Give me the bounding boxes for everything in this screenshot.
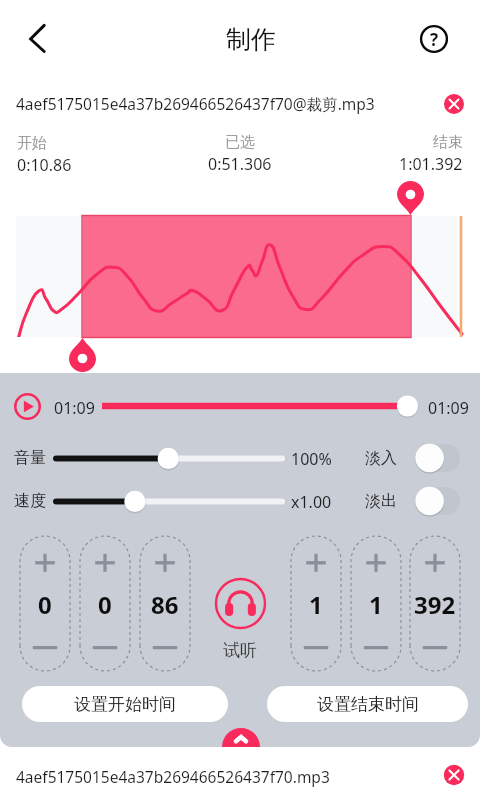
staticText: 制作	[226, 24, 276, 55]
staticText: 1	[369, 588, 383, 621]
button[interactable]: Start handle	[69, 338, 96, 372]
staticText: 392	[414, 588, 456, 621]
button[interactable]: Remove	[440, 761, 468, 789]
button[interactable]: Adjust 86	[140, 536, 190, 671]
button[interactable]: 速度	[54, 487, 284, 515]
button[interactable]: 设置开始时间	[22, 686, 228, 722]
staticText: 结束	[433, 133, 463, 152]
staticText: 音量	[14, 448, 46, 468]
button[interactable]: Back	[12, 16, 58, 62]
staticText: 1:01.392	[399, 153, 463, 175]
staticText: 01:09	[54, 397, 95, 419]
staticText: 1	[309, 588, 323, 621]
button[interactable]: Adjust 0	[20, 536, 70, 671]
button[interactable]: 淡入	[416, 444, 460, 472]
staticText: 设置开始时间	[74, 694, 176, 715]
staticText: 已选	[225, 133, 255, 152]
staticText: 淡入	[365, 448, 397, 468]
staticText: x1.00	[291, 491, 332, 513]
staticText: 0	[98, 588, 112, 621]
staticText: 0:10.86	[17, 154, 72, 176]
button[interactable]: 设置结束时间	[267, 686, 468, 722]
button[interactable]: Adjust 0	[80, 536, 130, 671]
staticText: 01:09	[428, 397, 469, 419]
button[interactable]: Adjust 1	[291, 536, 341, 671]
button[interactable]: Preview	[215, 578, 266, 629]
staticText: 速度	[14, 491, 46, 511]
button[interactable]: Help	[416, 21, 452, 57]
button[interactable]: Remove file	[439, 89, 469, 119]
staticText: 0	[38, 588, 52, 621]
staticText: 86	[151, 588, 179, 621]
button[interactable]: 淡出	[416, 487, 460, 515]
button[interactable]: 音量	[54, 444, 284, 472]
button[interactable]: End handle	[397, 181, 424, 215]
staticText: 设置结束时间	[317, 694, 419, 715]
button[interactable]: Collapse	[222, 728, 260, 747]
button[interactable]: Adjust 392	[410, 536, 460, 671]
button[interactable]: Adjust 1	[351, 536, 401, 671]
staticText: 0:51.306	[208, 153, 272, 175]
staticText: 4aef5175015e4a37b269466526437f70.mp3	[16, 766, 330, 787]
staticText: 100%	[291, 448, 332, 470]
button[interactable]: Play	[13, 392, 42, 421]
staticText: 试听	[223, 640, 257, 661]
staticText: 开始	[17, 134, 47, 153]
staticText: 淡出	[365, 491, 397, 511]
staticText: ?	[430, 28, 439, 51]
button[interactable]: Seek	[102, 392, 418, 420]
staticText: 4aef5175015e4a37b269466526437f70@裁剪.mp3	[16, 93, 375, 114]
